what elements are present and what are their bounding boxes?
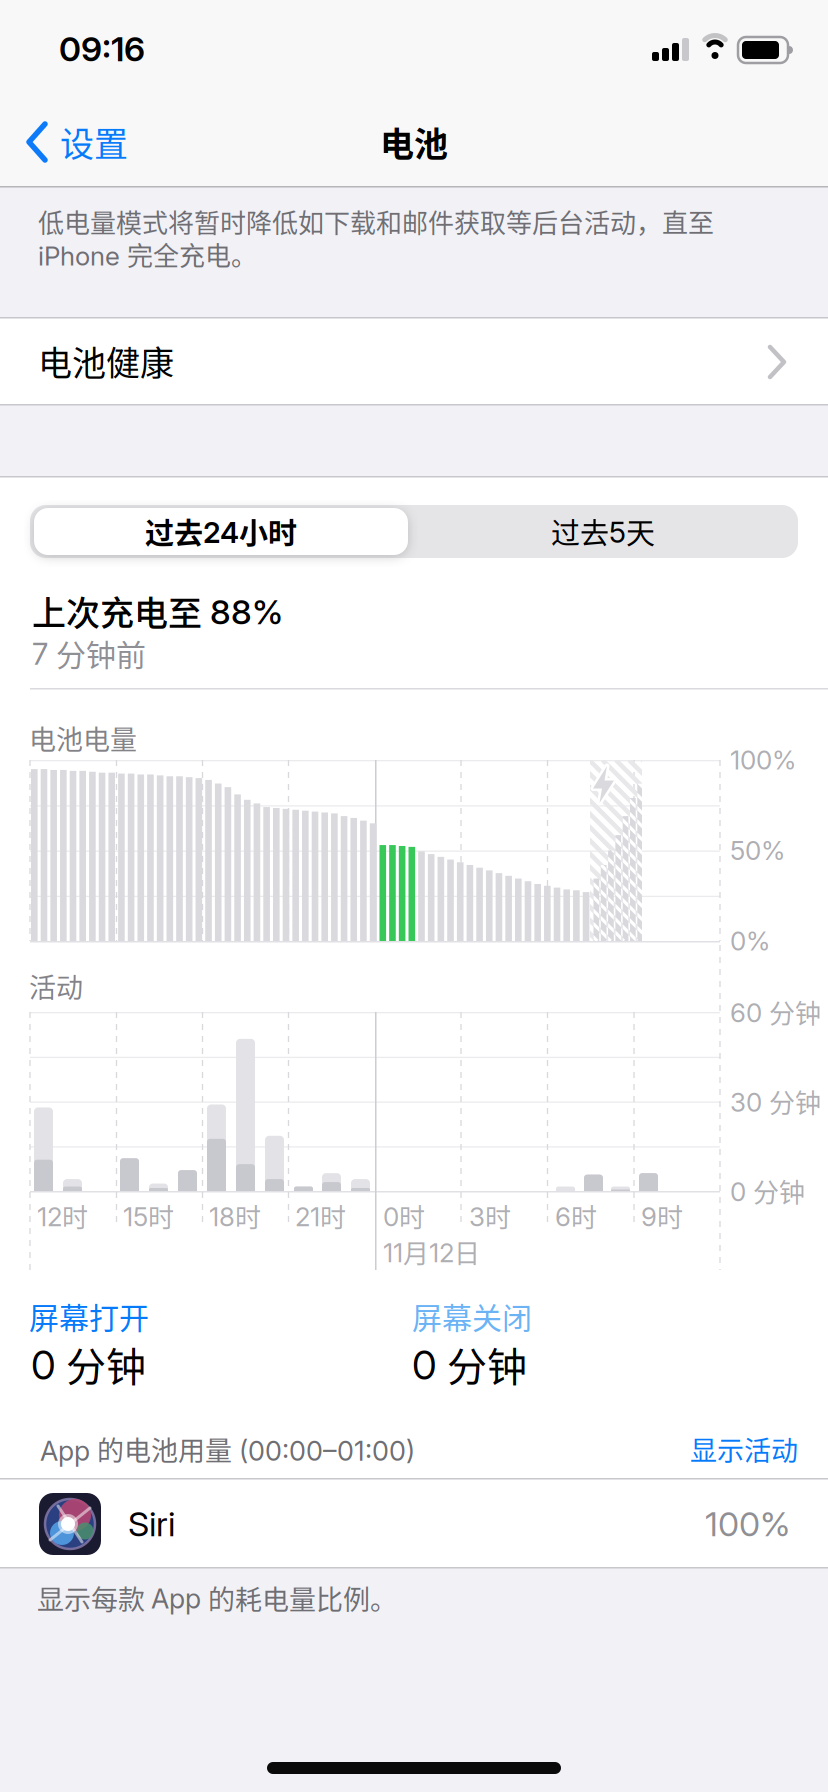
staticText: Siri [128,1504,175,1544]
staticText: 100% [705,1504,790,1544]
staticText: 电池健康 [38,337,174,385]
button[interactable]: 设置 [26,120,128,164]
staticText: 12时 [37,1198,88,1234]
staticText: 3时 [469,1198,511,1234]
staticText: 上次充电至 88% [32,587,283,635]
staticText: 电池 [380,118,448,166]
staticText: 屏幕关闭 [412,1295,532,1337]
staticText: 活动 [29,967,83,1005]
staticText: 6时 [555,1198,597,1234]
staticText: 7 分钟前 [32,632,146,674]
staticText: 18时 [209,1198,261,1234]
staticText: 30 分钟 [730,1083,821,1120]
staticText: 15时 [123,1198,174,1234]
staticText: 9时 [641,1198,683,1234]
button[interactable]: 过去24小时 [32,505,410,558]
button[interactable]: Siri [0,1480,828,1568]
staticText: 0% [730,926,770,956]
staticText: 0时 [383,1198,425,1234]
button[interactable]: 过去5天 [408,505,798,558]
staticText: 过去5天 [551,511,655,552]
staticText: 60 分钟 [730,994,821,1030]
staticText: 电池电量 [29,719,137,757]
staticText: 100% [730,745,796,775]
staticText: 50% [730,835,785,866]
button[interactable]: 电池健康 [0,318,828,404]
staticText: 0 分钟 [730,1173,805,1209]
staticText: 09:16 [59,29,145,69]
staticText: App 的电池用量 (00:00–01:00) [40,1430,415,1468]
staticText: 屏幕打开 [29,1295,149,1337]
staticText: 21时 [295,1198,346,1234]
staticText: 低电量模式将暂时降低如下载和邮件获取等后台活动，直至 iPhone 完全充电。 [38,205,714,270]
staticText: 显示每款 App 的耗电量比例。 [37,1579,397,1617]
staticText: 显示活动 [690,1430,798,1468]
staticText: 过去24小时 [145,511,297,552]
staticText: 11月12日 [383,1234,480,1270]
staticText: 0 分钟 [412,1336,527,1392]
staticText: 设置 [60,118,128,166]
button[interactable]: 显示活动 [578,1431,798,1467]
staticText: 0 分钟 [31,1336,146,1392]
